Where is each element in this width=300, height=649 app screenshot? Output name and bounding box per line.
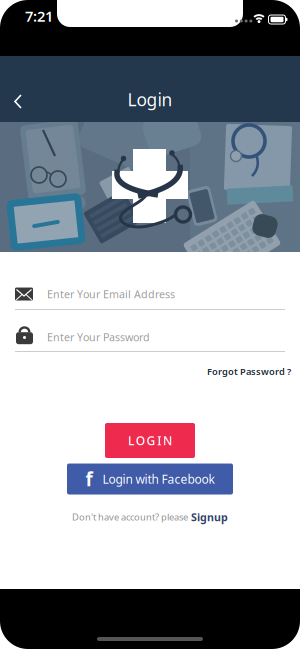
staticText: Login with Facebook [102, 471, 214, 487]
button[interactable]: Enter Your Password [15, 326, 285, 352]
staticText: Signup [191, 510, 228, 524]
staticText: Enter Your Email Address [47, 287, 175, 301]
staticText: Login [127, 88, 172, 111]
staticText: Forgot Password ? [207, 365, 291, 378]
staticText: Enter Your Password [47, 330, 150, 344]
staticText: LOGIN [128, 432, 172, 448]
button[interactable]: LOGIN [105, 423, 195, 458]
staticText: 7:21 [25, 6, 53, 26]
button[interactable]: f [67, 463, 233, 494]
staticText: f [85, 467, 92, 491]
button[interactable]: Forgot Password ? [207, 365, 291, 378]
button[interactable]: Back [6, 89, 30, 113]
staticText: Don't have account? please [72, 511, 188, 523]
button[interactable]: Signup [191, 510, 228, 524]
button[interactable]: Enter Your Email Address [15, 284, 285, 310]
